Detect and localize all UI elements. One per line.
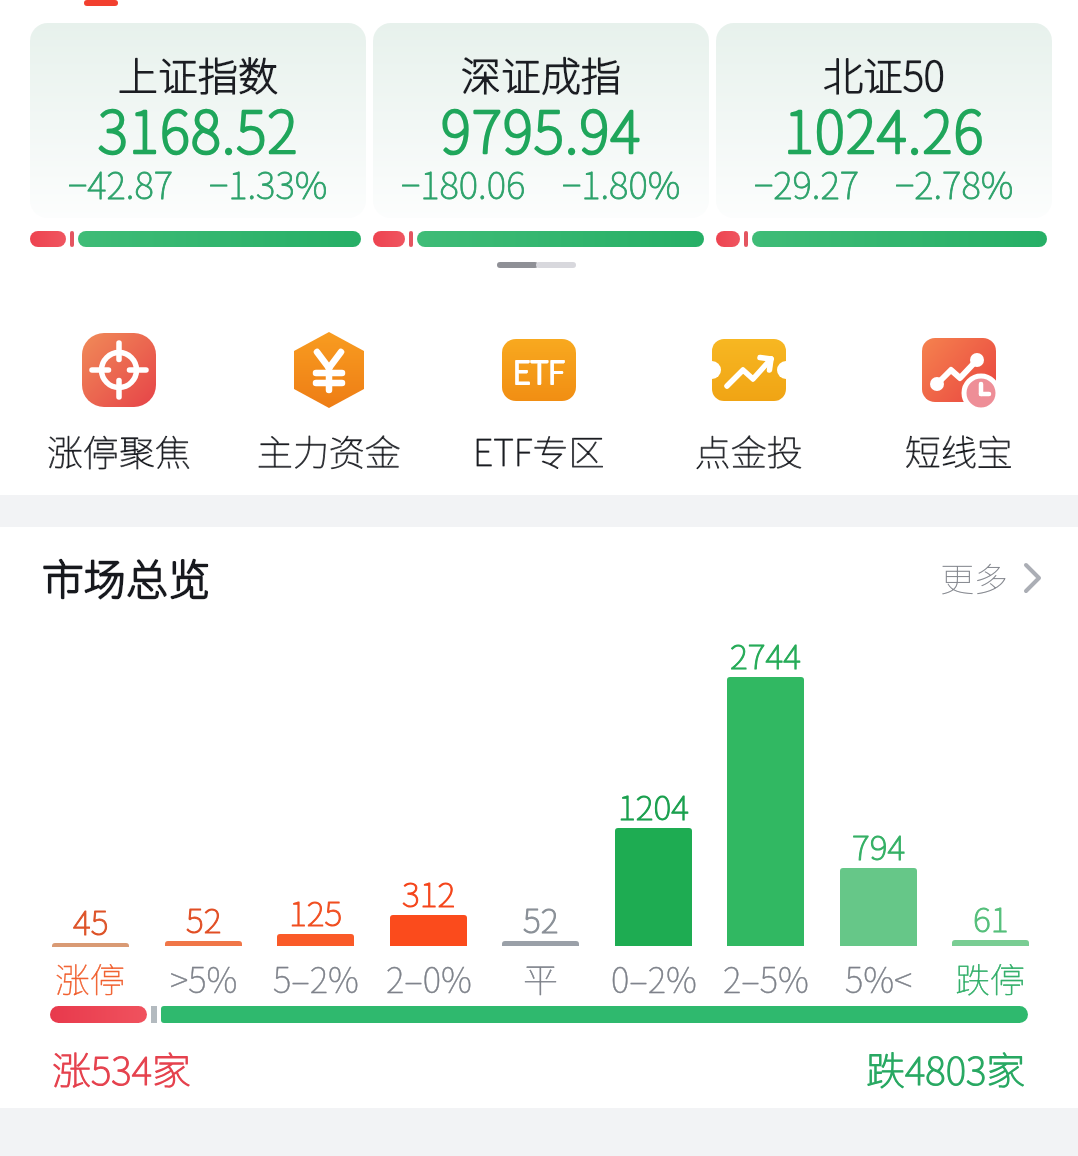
staticText: 涨534家: [52, 1040, 191, 1096]
staticText: −1.80%: [562, 156, 681, 210]
staticText: 上证指数: [118, 45, 278, 103]
staticText: 1204: [618, 781, 689, 830]
staticText: 52: [186, 894, 222, 943]
staticText: 跌4803家: [866, 1040, 1026, 1096]
button[interactable]: [294, 332, 364, 408]
staticText: 5%<: [845, 952, 913, 1003]
staticText: 52: [523, 894, 559, 943]
button[interactable]: 涨停聚焦: [14, 332, 224, 476]
staticText: 794: [852, 821, 906, 870]
staticText: −42.87: [68, 156, 173, 210]
staticText: 跌4803家: [866, 1040, 1026, 1096]
staticText: 1024.26: [784, 87, 985, 170]
staticText: 主力资金: [257, 424, 402, 476]
staticText: 平: [523, 952, 559, 1003]
staticText: 5–2%: [273, 952, 359, 1003]
staticText: ETF专区: [473, 424, 605, 476]
button[interactable]: ETF: [502, 339, 576, 401]
staticText: 2744: [730, 630, 801, 679]
staticText: 3168.52: [98, 87, 299, 170]
button[interactable]: 上证指数: [30, 23, 366, 218]
button[interactable]: 深证成指: [373, 23, 709, 218]
staticText: 0–2%: [611, 952, 697, 1003]
staticText: 2–5%: [723, 952, 809, 1003]
staticText: 涨停聚焦: [47, 424, 192, 476]
staticText: >5%: [170, 952, 238, 1003]
staticText: −42.87: [68, 156, 173, 210]
staticText: 1024.26: [784, 87, 985, 170]
staticText: 涨停聚焦: [47, 424, 192, 476]
button[interactable]: 主力资金: [224, 332, 434, 476]
staticText: 主力资金: [257, 424, 402, 476]
staticText: 125: [289, 887, 343, 936]
staticText: 3168.52: [98, 87, 299, 170]
staticText: 61: [973, 893, 1009, 942]
staticText: 5–2%: [273, 952, 359, 1003]
staticText: −29.27: [754, 156, 859, 210]
button[interactable]: [922, 338, 996, 402]
staticText: 45: [73, 896, 109, 945]
staticText: 跌停: [955, 952, 1026, 1003]
staticText: 1204: [618, 781, 689, 830]
staticText: 深证成指: [461, 45, 621, 103]
staticText: 北证50: [823, 45, 945, 103]
staticText: ETF: [513, 348, 565, 393]
staticText: 平: [523, 952, 559, 1003]
staticText: 北证50: [823, 45, 945, 103]
staticText: 125: [289, 887, 343, 936]
staticText: ETF专区: [473, 424, 605, 476]
staticText: 点金投: [695, 424, 804, 476]
button[interactable]: [712, 339, 786, 401]
staticText: 跌停: [955, 952, 1026, 1003]
staticText: −2.78%: [895, 156, 1014, 210]
staticText: 312: [402, 868, 456, 917]
staticText: 涨534家: [52, 1040, 191, 1096]
staticText: 9795.94: [441, 87, 642, 170]
button[interactable]: ETF: [434, 332, 644, 476]
staticText: 2–5%: [723, 952, 809, 1003]
staticText: −180.06: [401, 156, 526, 210]
staticText: 深证成指: [461, 45, 621, 103]
staticText: −2.78%: [895, 156, 1014, 210]
staticText: 2–0%: [386, 952, 472, 1003]
staticText: 52: [523, 894, 559, 943]
staticText: 794: [852, 821, 906, 870]
staticText: 涨停: [55, 952, 126, 1003]
button[interactable]: 更多: [940, 553, 1042, 602]
button[interactable]: 点金投: [644, 332, 854, 476]
staticText: −1.33%: [209, 156, 328, 210]
staticText: 涨停: [55, 952, 126, 1003]
staticText: 市场总览: [42, 546, 211, 607]
staticText: 2–0%: [386, 952, 472, 1003]
staticText: −180.06: [401, 156, 526, 210]
staticText: −1.33%: [209, 156, 328, 210]
staticText: 更多: [940, 553, 1008, 602]
button[interactable]: 北证50: [716, 23, 1052, 218]
staticText: 市场总览: [42, 546, 211, 607]
staticText: −29.27: [754, 156, 859, 210]
staticText: 0–2%: [611, 952, 697, 1003]
staticText: 2744: [730, 630, 801, 679]
staticText: 5%<: [845, 952, 913, 1003]
staticText: −1.80%: [562, 156, 681, 210]
staticText: 短线宝: [905, 424, 1014, 476]
staticText: 312: [402, 868, 456, 917]
staticText: >5%: [170, 952, 238, 1003]
staticText: 短线宝: [905, 424, 1014, 476]
staticText: 9795.94: [441, 87, 642, 170]
button[interactable]: [82, 333, 156, 407]
staticText: 点金投: [695, 424, 804, 476]
staticText: ETF: [513, 348, 565, 393]
staticText: 45: [73, 896, 109, 945]
button[interactable]: 短线宝: [854, 332, 1064, 476]
staticText: 61: [973, 893, 1009, 942]
staticText: 52: [186, 894, 222, 943]
staticText: 上证指数: [118, 45, 278, 103]
